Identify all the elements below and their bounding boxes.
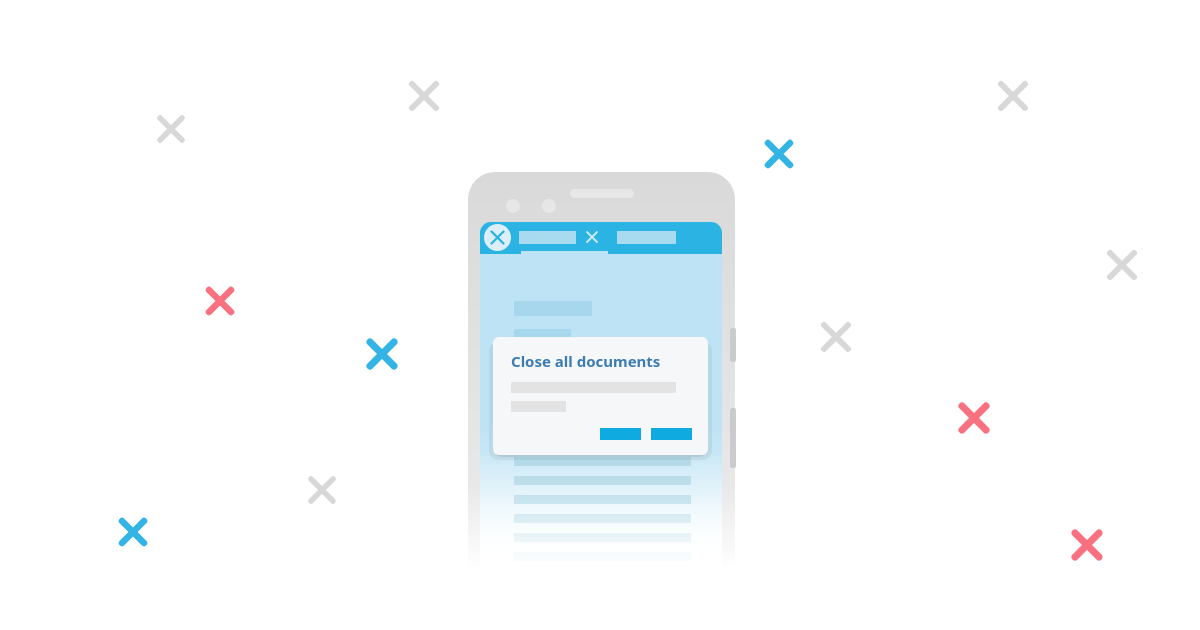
button[interactable]: Volume: [730, 328, 736, 362]
staticText: Close all documents: [511, 351, 661, 371]
button[interactable]: Close tab: [584, 229, 600, 245]
button[interactable]: Close: [484, 224, 511, 251]
